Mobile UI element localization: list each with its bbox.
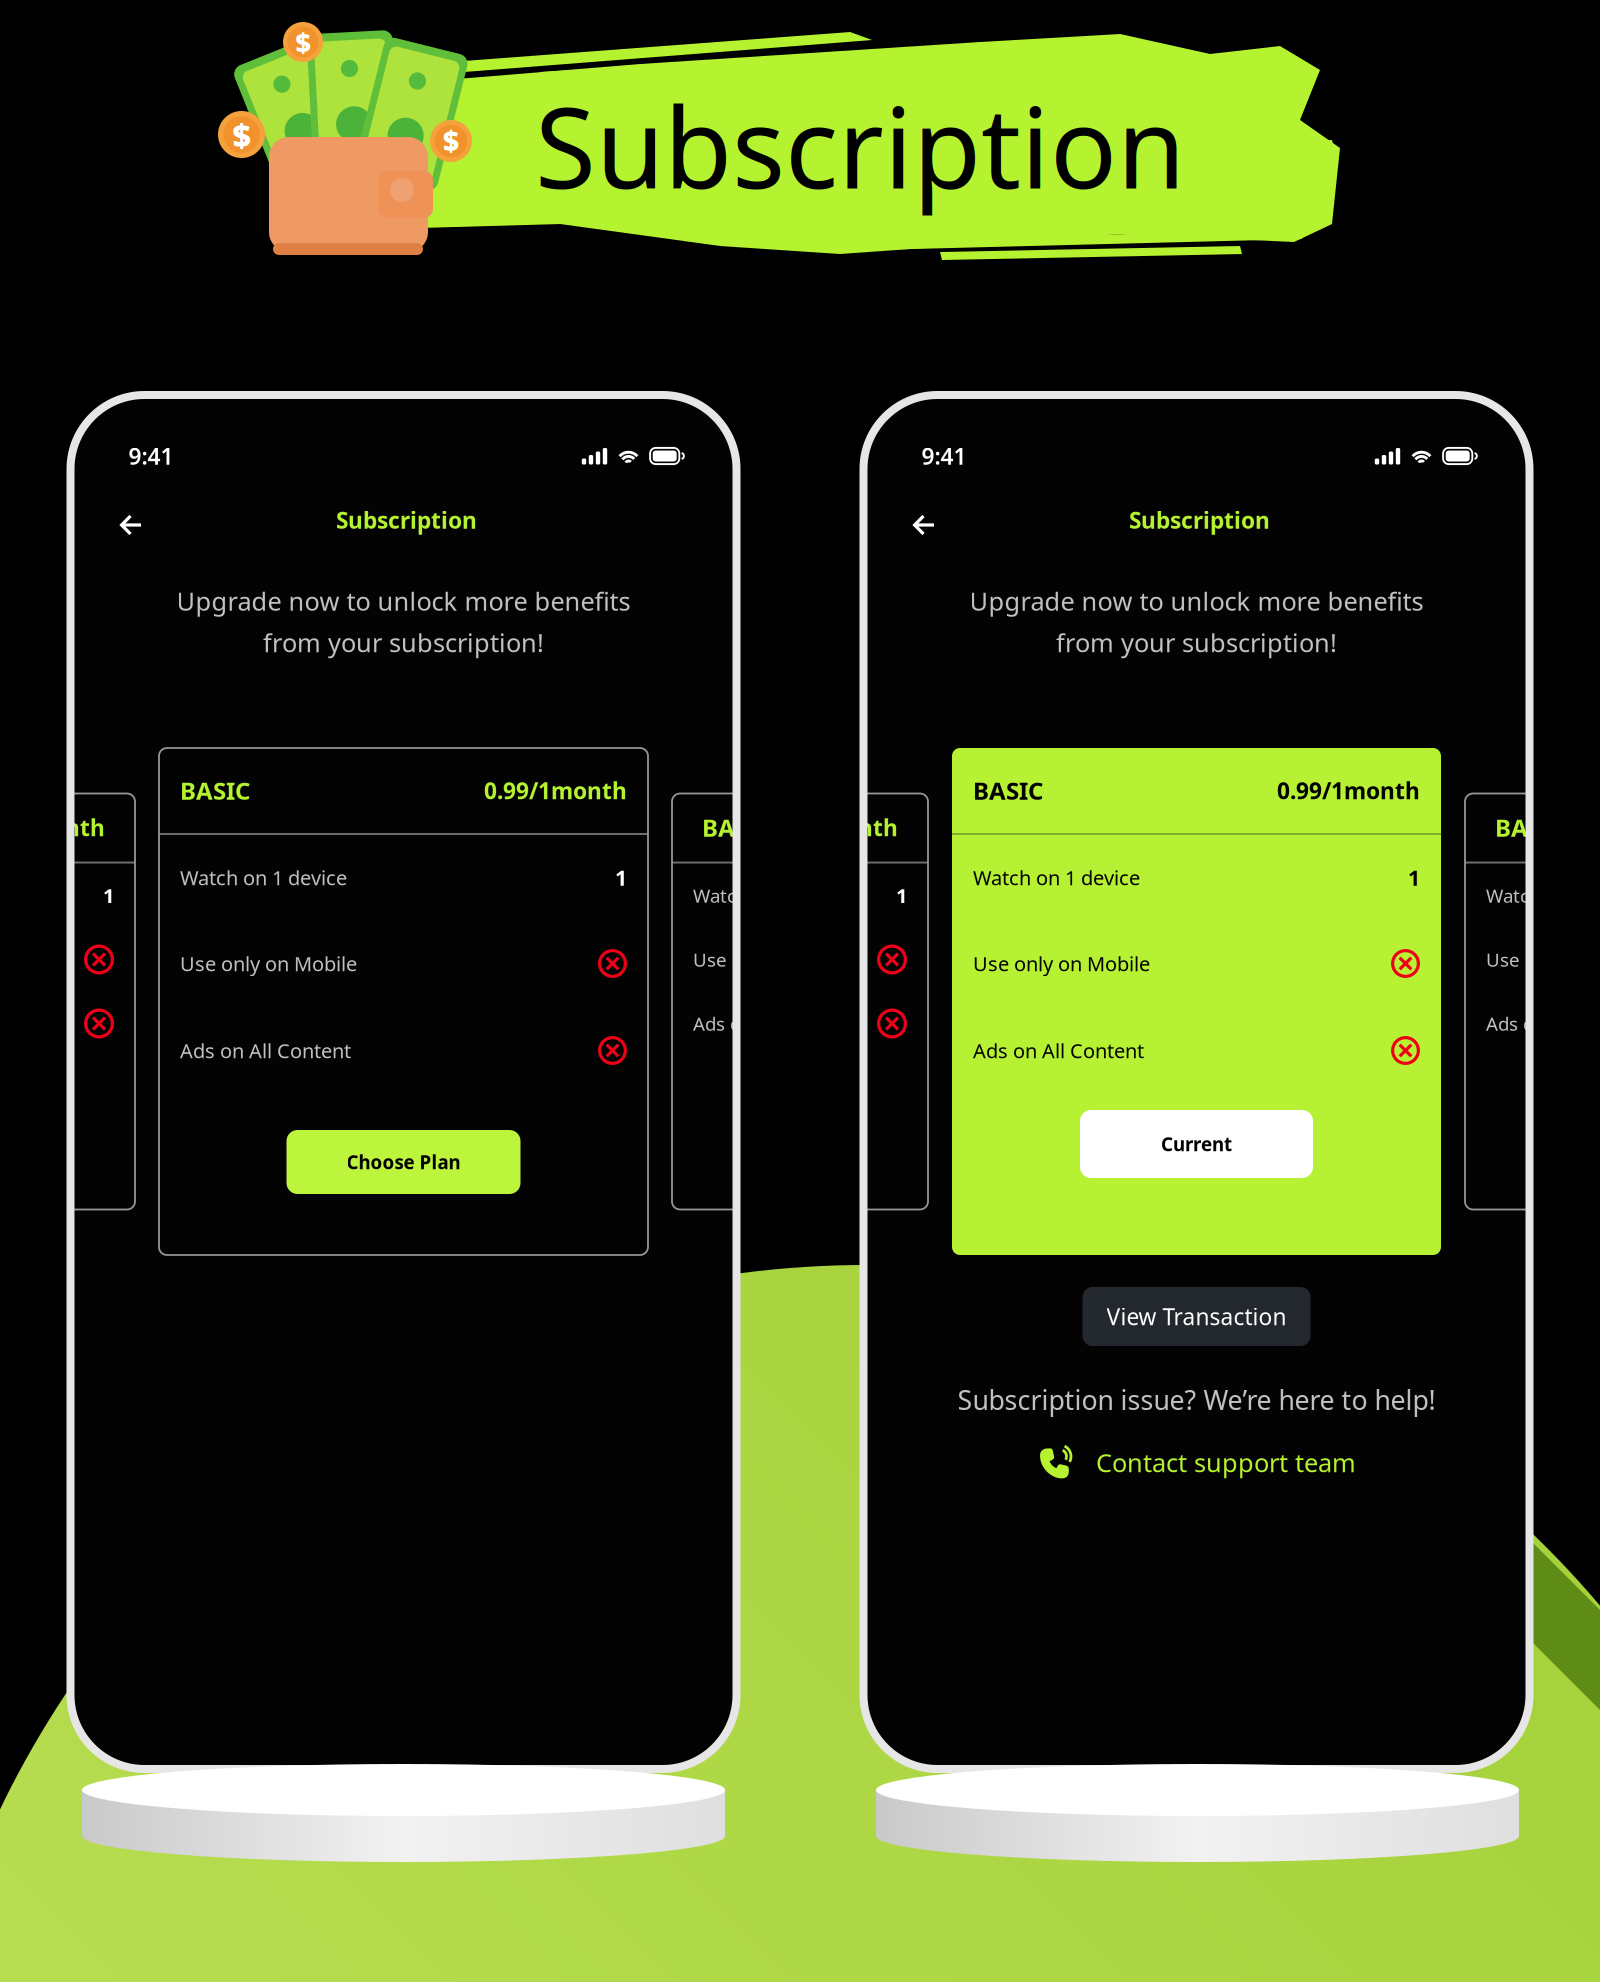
staticText: Subscription <box>1129 505 1270 535</box>
staticText: Use only on Mobile <box>1486 947 1600 972</box>
staticText: BASIC <box>180 775 250 806</box>
staticText: Subscription <box>336 505 477 535</box>
staticText: 1 <box>615 863 627 892</box>
staticText: 0.99/1month <box>1277 775 1420 805</box>
staticText: $ <box>232 113 250 156</box>
staticText: 9:41 <box>128 441 173 471</box>
staticText: 1 <box>103 882 114 909</box>
staticText: Ads on All Content <box>973 1037 1144 1064</box>
staticText: Ads on All Content <box>1486 1011 1600 1036</box>
staticText: Subscription <box>535 72 1185 219</box>
staticText: 1 <box>1129 882 1140 909</box>
staticText: Use only on Mobile <box>460 947 630 972</box>
staticText: Upgrade now to unlock more benefits <box>176 584 630 618</box>
staticText: Subscription issue? We’re here to help! <box>957 1382 1435 1417</box>
staticText: Use only on Mobile <box>973 950 1150 977</box>
staticText: 0.99/1month <box>484 775 627 805</box>
staticText: 1 <box>1408 863 1420 892</box>
staticText: $ <box>295 24 310 60</box>
staticText: BASIC <box>973 775 1043 806</box>
staticText: BASIC <box>1495 812 1565 843</box>
staticText: Contact support team <box>1096 1446 1356 1479</box>
staticText: Watch on 1 device <box>1486 883 1600 908</box>
staticText: from your subscription! <box>1056 626 1337 659</box>
button[interactable]: Back <box>894 496 954 554</box>
staticText: Use only on Mobile <box>693 947 863 972</box>
staticText: 0.99/1month <box>988 812 1131 842</box>
button[interactable]: Choose Plan <box>286 1130 520 1194</box>
button[interactable]: Back <box>101 496 161 554</box>
staticText: Choose Plan <box>346 1150 460 1174</box>
staticText: View Transaction <box>1106 1301 1286 1331</box>
staticText: Current <box>1161 1132 1232 1156</box>
staticText: BASIC <box>702 812 772 843</box>
button[interactable]: Current <box>1080 1110 1313 1178</box>
staticText: 0.99/1month <box>755 812 898 842</box>
staticText: 9:41 <box>921 441 966 471</box>
staticText: $ <box>443 122 459 160</box>
button[interactable]: Contact support team <box>1037 1445 1356 1479</box>
staticText: Watch on 1 device <box>180 864 347 891</box>
button[interactable]: View Transaction <box>1082 1287 1310 1346</box>
staticText: from your subscription! <box>263 626 544 659</box>
staticText: Watch on 1 device <box>693 883 852 908</box>
staticText: Use only on Mobile <box>180 950 357 977</box>
staticText: Ads on All Content <box>693 1011 857 1036</box>
staticText: Ads on All Content <box>180 1037 351 1064</box>
staticText: 1 <box>896 882 907 909</box>
staticText: 0.99/1month <box>0 812 105 842</box>
staticText: Upgrade now to unlock more benefits <box>969 584 1423 618</box>
staticText: Watch on 1 device <box>973 864 1140 891</box>
staticText: BASIC <box>469 812 539 843</box>
